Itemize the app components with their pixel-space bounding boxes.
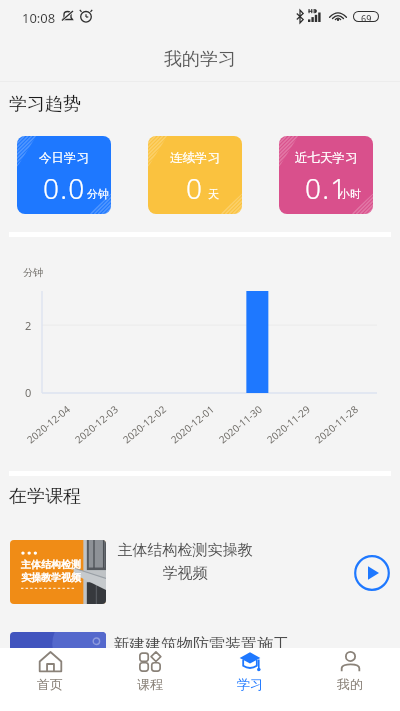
staticText: 学习趋势 bbox=[9, 93, 81, 116]
button[interactable]: 新建建筑物防雷装置 bbox=[0, 620, 400, 648]
staticText: 今日学习 bbox=[39, 150, 89, 166]
staticText: 0 bbox=[186, 169, 204, 207]
staticText: 0 bbox=[25, 385, 32, 400]
staticText: 新建建筑物防雷装置施工 bbox=[113, 635, 289, 655]
staticText: 0.1 bbox=[305, 169, 348, 207]
staticText: 近七天学习 bbox=[295, 150, 358, 166]
button[interactable]: 课程 bbox=[100, 648, 200, 711]
button[interactable]: 今日学习 bbox=[17, 136, 111, 214]
staticText: 2020-12-01 bbox=[168, 402, 217, 446]
button[interactable]: 近七天学习 bbox=[279, 136, 373, 214]
staticText: 0.0 bbox=[43, 169, 86, 207]
staticText: 2020-11-29 bbox=[264, 402, 313, 446]
button[interactable]: 连续学习 bbox=[148, 136, 242, 214]
staticText: 分钟 bbox=[87, 187, 109, 201]
staticText: 2020-12-02 bbox=[120, 402, 169, 446]
staticText: 2020-11-28 bbox=[312, 402, 361, 446]
button[interactable]: 学习 bbox=[200, 648, 300, 711]
staticText: 2020-12-03 bbox=[72, 402, 121, 446]
button[interactable]: 首页 bbox=[0, 648, 100, 711]
staticText: 课程 bbox=[137, 676, 163, 692]
staticText: 小时 bbox=[339, 187, 361, 201]
staticText: 实操教学视频 bbox=[21, 571, 81, 584]
staticText: 分钟 bbox=[23, 266, 43, 279]
button[interactable]: 播放 bbox=[354, 555, 390, 591]
staticText: 我的 bbox=[337, 676, 363, 692]
staticText: 连续学习 bbox=[170, 150, 220, 166]
staticText: 2 bbox=[25, 318, 32, 333]
staticText: 10:08 bbox=[22, 9, 56, 27]
staticText: 主体结构检测 bbox=[21, 558, 81, 571]
staticText: 首页 bbox=[37, 676, 63, 692]
staticText: 在学课程 bbox=[9, 485, 81, 508]
staticText: 天 bbox=[208, 187, 219, 201]
staticText: 2020-11-30 bbox=[216, 402, 265, 446]
staticText: 主体结构检测实操教学视频 bbox=[112, 541, 258, 583]
staticText: 2020-12-04 bbox=[24, 402, 73, 446]
staticText: 69 bbox=[361, 12, 372, 21]
staticText: 新建建筑物防雷装置 bbox=[18, 658, 106, 660]
button[interactable]: 主体结构检测 bbox=[0, 515, 400, 618]
staticText: 学习 bbox=[237, 676, 263, 692]
button[interactable]: 我的 bbox=[300, 648, 400, 711]
staticText: 我的学习 bbox=[164, 48, 236, 71]
